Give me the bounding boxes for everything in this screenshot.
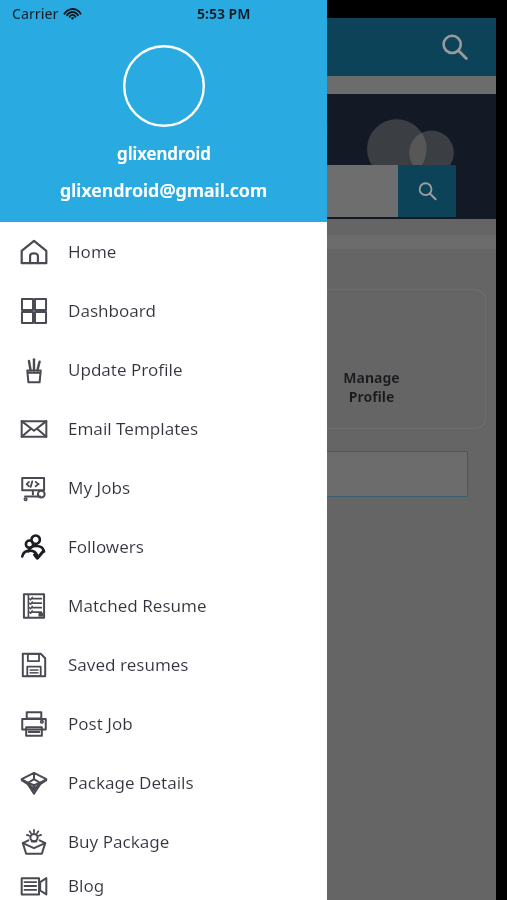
button[interactable]: Dashboard xyxy=(0,281,327,340)
staticText: 5:53 PM xyxy=(197,4,251,23)
staticText: Manage Profile xyxy=(343,368,400,406)
button[interactable]: Saved resumes xyxy=(0,635,327,694)
staticText: Dashboard xyxy=(68,299,157,322)
staticText: Carrier xyxy=(12,4,59,23)
staticText: Package Details xyxy=(68,771,194,794)
button[interactable]: Home xyxy=(0,222,327,281)
staticText: My Jobs xyxy=(68,476,131,499)
button[interactable]: Search jobs xyxy=(398,165,456,217)
button[interactable]: Blog xyxy=(0,871,327,900)
button[interactable]: Email Templates xyxy=(0,399,327,458)
button[interactable]: Featured Jobs xyxy=(28,451,468,497)
staticText: Email Templates xyxy=(68,417,199,440)
staticText: Find Jobs xyxy=(110,368,140,406)
staticText: glixendroid@gmail.com xyxy=(60,178,268,203)
button[interactable]: Post Job xyxy=(0,694,327,753)
button[interactable]: Update Profile xyxy=(0,340,327,399)
button[interactable]: Followers xyxy=(0,517,327,576)
staticText: glixendroid xyxy=(117,142,211,165)
button[interactable]: My Jobs xyxy=(0,458,327,517)
button[interactable]: Buy Package xyxy=(0,812,327,871)
staticText: Blog xyxy=(68,874,105,897)
button[interactable]: Package Details xyxy=(0,753,327,812)
button[interactable]: Matched Resume xyxy=(0,576,327,635)
button[interactable]: Manage Profile xyxy=(257,289,486,429)
staticText: Update Profile xyxy=(68,358,183,381)
button[interactable]: Search xyxy=(434,27,474,67)
staticText: Home xyxy=(68,240,117,263)
staticText: Saved resumes xyxy=(68,653,189,676)
staticText: Buy Package xyxy=(68,830,170,853)
staticText: Post Job xyxy=(68,712,133,735)
staticText: Matched Resume xyxy=(68,594,207,617)
button[interactable]: Find Jobs xyxy=(10,289,239,429)
staticText: Followers xyxy=(68,535,144,558)
